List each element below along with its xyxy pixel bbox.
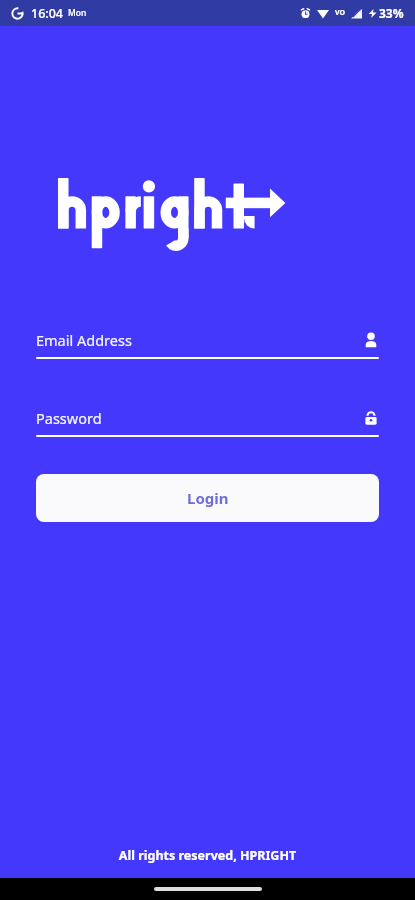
staticText: Mon <box>68 7 87 19</box>
staticText: All rights reserved, HPRIGHT <box>0 847 415 864</box>
staticText: 16:04 <box>31 5 64 22</box>
staticText: VO <box>335 8 346 18</box>
button[interactable]: Email Address <box>36 323 379 357</box>
staticText: 33% <box>379 5 404 21</box>
button[interactable]: Login <box>36 474 379 522</box>
button[interactable]: Password <box>36 401 379 435</box>
staticText: Login <box>187 488 229 508</box>
staticText: Email Address <box>36 330 363 350</box>
other: Password field <box>363 410 379 426</box>
other: Email address field <box>363 332 379 348</box>
staticText: Password <box>36 408 363 428</box>
